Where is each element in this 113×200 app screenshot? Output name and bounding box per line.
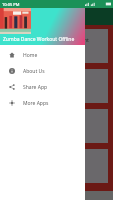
button[interactable]: Home <box>0 47 85 63</box>
staticText: 10:05 PM <box>2 2 20 7</box>
button[interactable]: Feel Sexy Zumba Dance <box>4 69 108 103</box>
button[interactable]: Share App <box>0 79 85 95</box>
staticText: Zumba Dance Workout Offline <box>3 36 75 43</box>
button[interactable]: Zumba Dance Beauty Body <box>4 109 108 143</box>
button[interactable]: Zumba Gold Dance (exercise) <box>4 149 108 183</box>
button[interactable]: About Us <box>0 63 85 79</box>
staticText: About Us <box>23 68 45 75</box>
staticText: Share App <box>23 84 48 91</box>
staticText: Home <box>23 52 38 59</box>
staticText: More Apps <box>23 100 49 107</box>
button[interactable]: More Apps <box>0 95 85 111</box>
staticText: Zumba Dance to lose your weight <box>10 37 89 44</box>
button[interactable]: Zumba Dance to lose your weight <box>4 29 108 63</box>
